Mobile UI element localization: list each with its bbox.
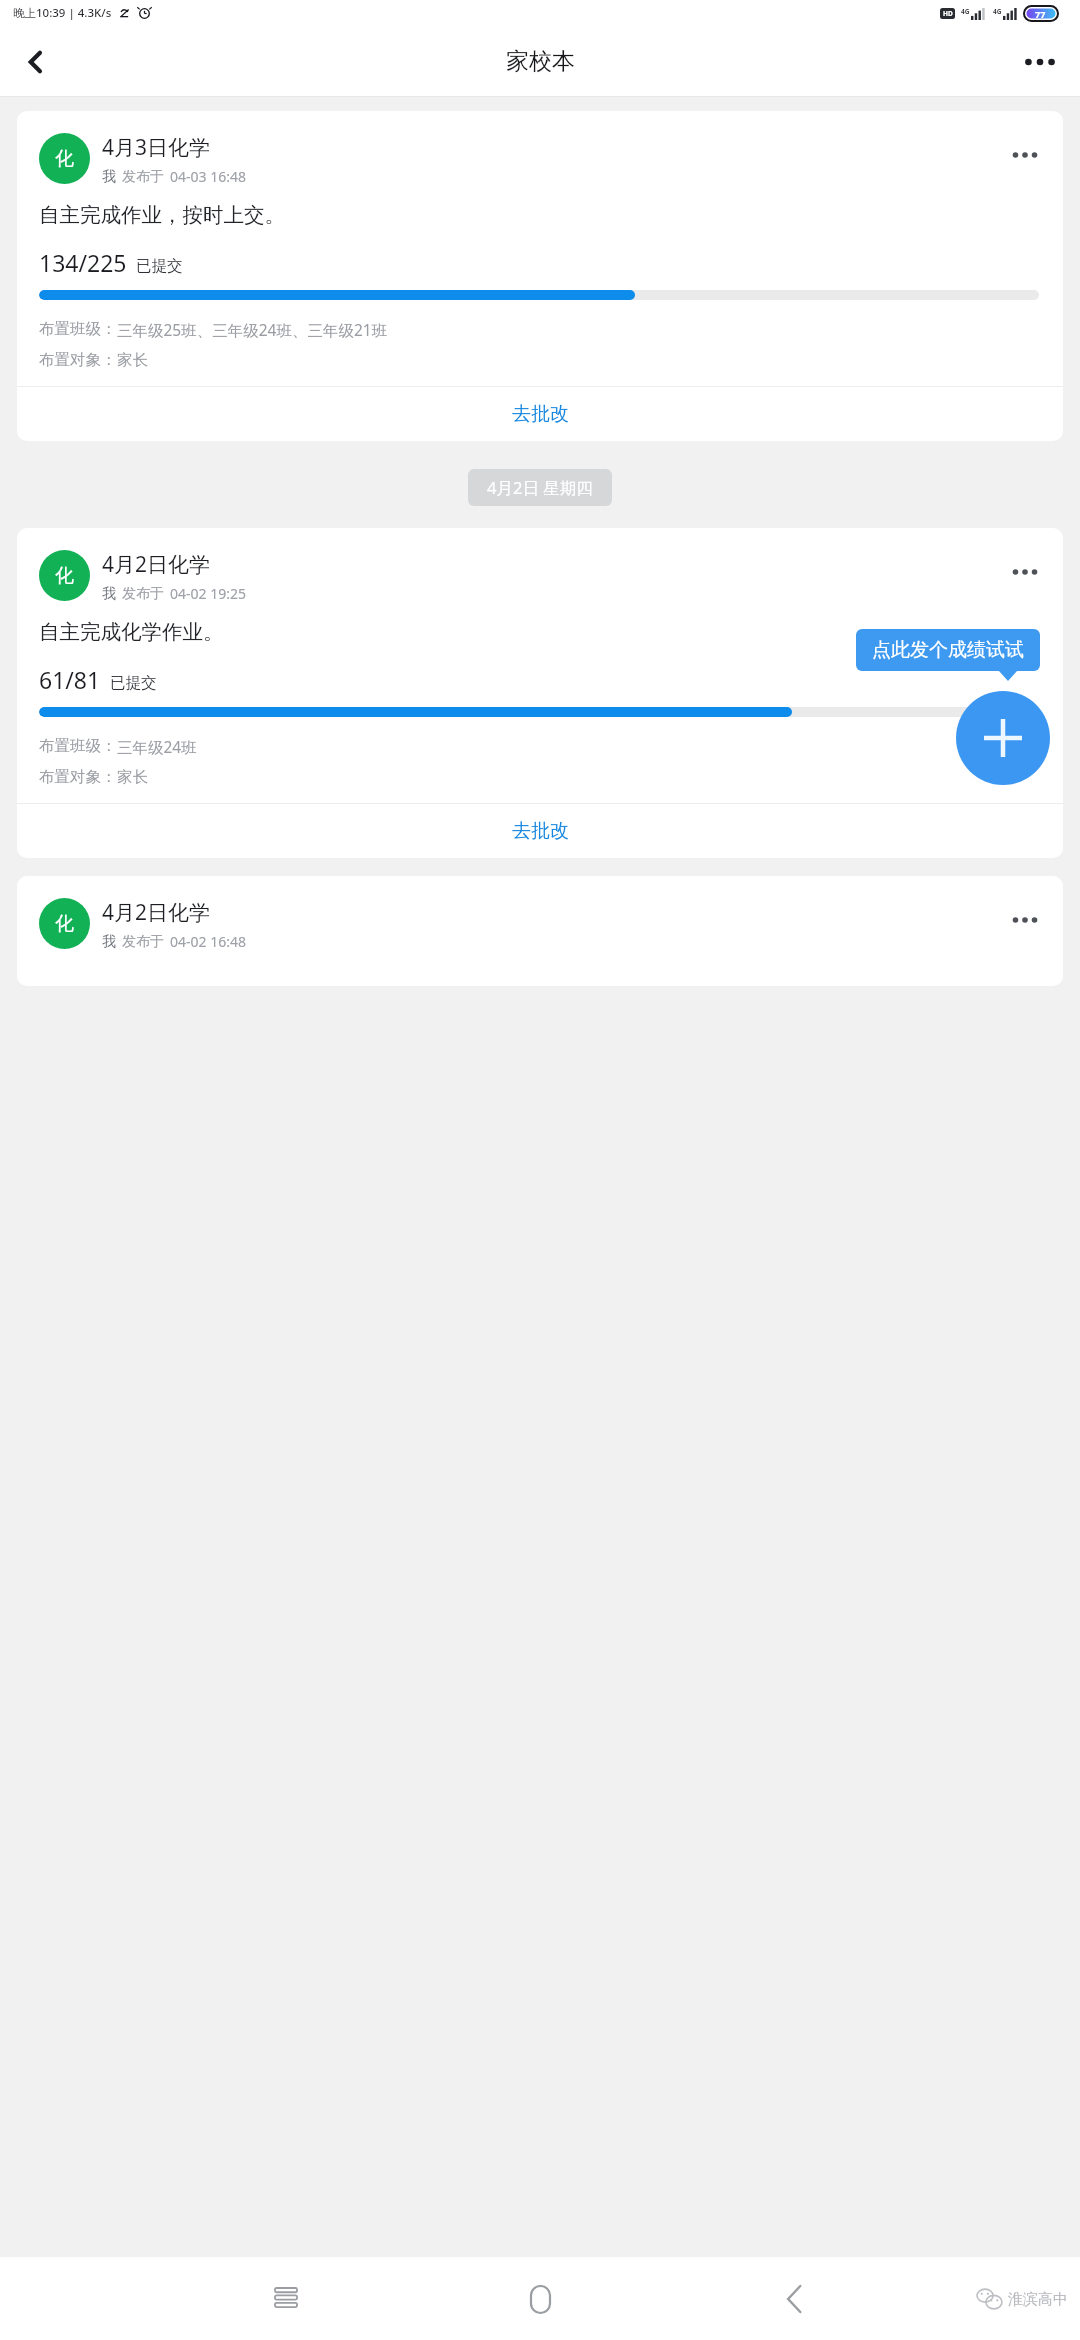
button[interactable]: More options [1012,34,1068,90]
staticText: 134/225 [39,247,127,278]
button[interactable]: 去批改 [17,387,1063,441]
staticText: 4月3日化学 [102,133,211,162]
staticText: 04-02 19:25 [170,584,246,603]
staticText: 家长 [117,767,148,787]
button[interactable]: More [1003,898,1047,942]
staticText: 61/81 [39,664,101,695]
staticText: 化 [55,564,74,588]
staticText: 发布于 [122,933,164,951]
staticText: 4月2日化学 [102,898,211,927]
button[interactable]: Home [512,2271,568,2327]
button[interactable]: More [1003,550,1047,594]
staticText: 化 [55,147,74,171]
staticText: 淮滨高中 [1008,2290,1068,2309]
button[interactable]: More [1003,133,1047,177]
staticText: 自主完成作业，按时上交。 [39,202,285,228]
staticText: 77 [1035,8,1046,20]
staticText: HD [943,9,953,18]
staticText: 我 [102,933,116,951]
staticText: 4G [961,7,970,16]
staticText: 已提交 [110,673,157,693]
staticText: 家长 [117,350,148,370]
staticText: 化 [55,912,74,936]
button[interactable]: Add [956,691,1050,785]
staticText: 04-02 16:48 [170,932,246,951]
staticText: 布置对象： [39,350,117,370]
staticText: 点此发个成绩试试 [872,638,1024,662]
staticText: 三年级24班 [117,736,197,757]
staticText: 发布于 [122,168,164,186]
staticText: 布置班级： [39,736,117,756]
staticText: 布置班级： [39,319,117,339]
staticText: 布置对象： [39,767,117,787]
staticText: 我 [102,168,116,186]
staticText: 已提交 [136,256,183,276]
staticText: 自主完成化学作业。 [39,619,224,645]
button[interactable]: Back [8,34,64,90]
button[interactable]: 去批改 [17,804,1063,858]
staticText: 4月2日化学 [102,550,211,579]
staticText: 我 [102,585,116,603]
button[interactable]: Back [766,2271,822,2327]
button[interactable]: 化 [17,876,1063,986]
staticText: 发布于 [122,585,164,603]
button[interactable]: 化 [17,528,1063,858]
button[interactable]: 点此发个成绩试试 [856,629,1040,671]
staticText: 04-03 16:48 [170,167,246,186]
button[interactable]: 化 [17,111,1063,441]
staticText: 去批改 [512,819,569,843]
staticText: 三年级25班、三年级24班、三年级21班 [117,319,388,340]
staticText: 家校本 [506,47,575,76]
button[interactable]: Recents [258,2271,314,2327]
staticText: 晚上10:39 | 4.3K/s [13,5,112,21]
staticText: 去批改 [512,402,569,426]
staticText: 4G [993,7,1002,16]
staticText: 4月2日 星期四 [487,476,593,499]
